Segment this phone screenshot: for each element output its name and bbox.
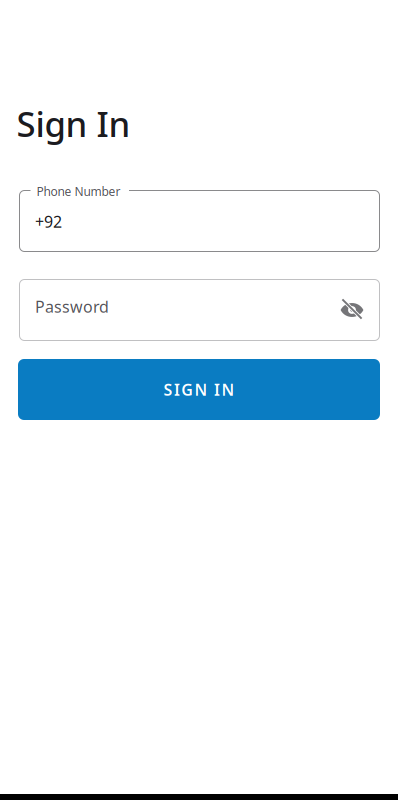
staticText: Sign In — [16, 100, 130, 146]
staticText: +92 — [35, 211, 62, 232]
button[interactable]: Phone Number — [0, 0, 398, 800]
staticText: SIGN IN — [164, 379, 234, 400]
button[interactable]: Password — [0, 0, 398, 800]
button[interactable]: SIGN IN — [0, 0, 398, 800]
staticText: Phone Number — [36, 183, 120, 199]
staticText: Password — [35, 296, 109, 317]
button[interactable]: Show password — [0, 0, 398, 800]
